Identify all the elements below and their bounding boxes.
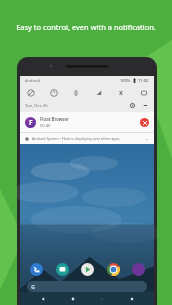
button[interactable]: Android System • Float is displaying ove…: [20, 133, 154, 144]
button[interactable]: Flashlight: [69, 86, 82, 99]
button[interactable]: Settings: [129, 102, 136, 109]
staticText: Easy to control, even with a notificatio…: [8, 22, 164, 32]
button[interactable]: Bluetooth: [47, 86, 60, 99]
staticText: G: [31, 283, 36, 291]
button[interactable]: Chrome: [105, 261, 121, 277]
button[interactable]: Close: [140, 118, 149, 127]
button[interactable]: Cast: [137, 86, 150, 99]
button[interactable]: Play Store: [79, 261, 95, 277]
button[interactable]: Phone: [28, 261, 44, 277]
button[interactable]: Auto rotate: [114, 86, 127, 99]
staticText: Android System • Float is displaying ove…: [32, 136, 120, 141]
staticText: F: [29, 118, 33, 127]
staticText: Float Browser: [40, 116, 69, 122]
button[interactable]: Assistant: [95, 292, 108, 305]
button[interactable]: Mobile data: [92, 86, 105, 99]
staticText: Tue, Dec 26: [25, 103, 48, 109]
button[interactable]: Recents: [125, 292, 138, 305]
staticText: ⌄: [145, 136, 149, 141]
button[interactable]: G: [27, 281, 147, 292]
button[interactable]: Home: [66, 292, 79, 305]
button[interactable]: Expand: [142, 102, 149, 109]
button[interactable]: Float Browser: [130, 261, 146, 277]
staticText: 100%: [120, 78, 131, 83]
button[interactable]: Messages: [54, 261, 70, 277]
button[interactable]: F: [20, 112, 154, 132]
staticText: 00:40: [40, 123, 51, 128]
staticText: Android: [25, 78, 40, 83]
button[interactable]: Wi-Fi: [24, 86, 37, 99]
staticText: 11:02: [138, 78, 149, 83]
button[interactable]: Back: [36, 292, 49, 305]
